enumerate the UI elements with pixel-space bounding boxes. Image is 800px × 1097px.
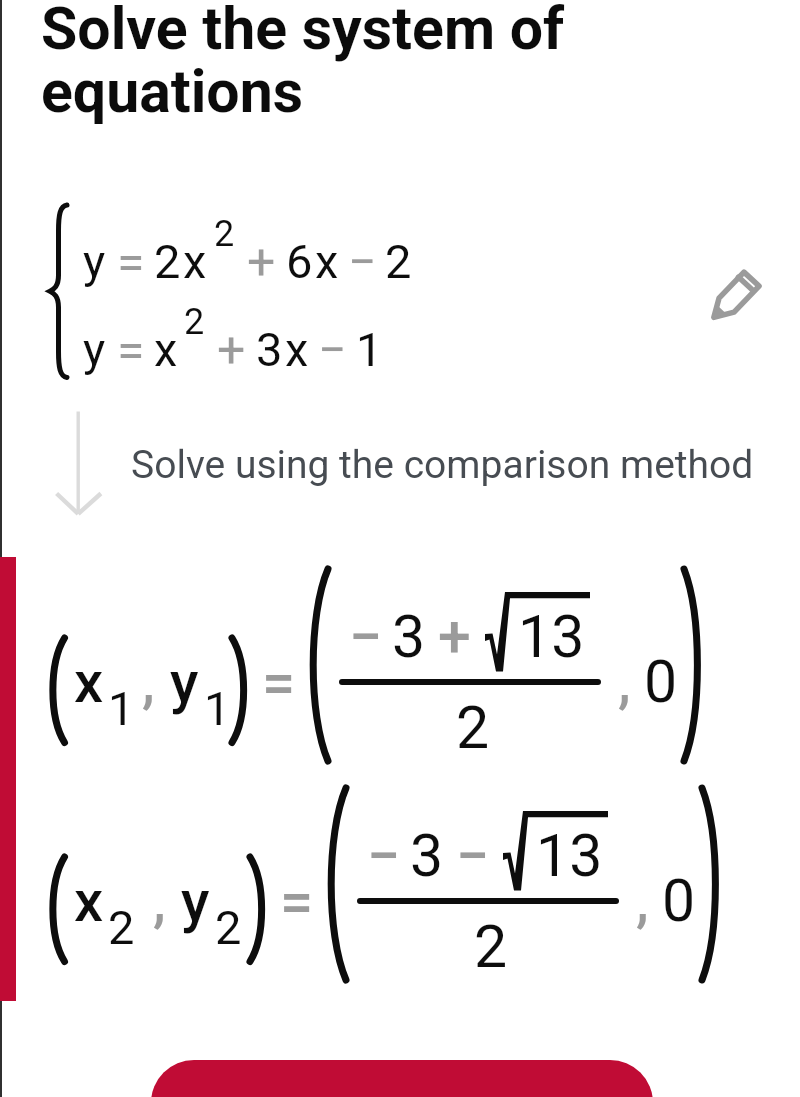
staticText: 1 [204,681,231,736]
staticText: − [456,821,490,890]
staticText: 2 [184,301,205,343]
staticText: 3 [256,322,283,377]
staticText: equations [41,57,304,126]
staticText: − [349,602,383,671]
staticText: y [83,234,106,289]
staticText: x [183,234,207,289]
staticText: 2 [385,234,412,289]
staticText: 13 [518,602,585,671]
staticText: 0 [662,866,696,935]
staticText: Solve using the comparison method [131,442,754,488]
staticText: − [367,821,401,890]
staticText: = [280,867,314,936]
staticText: 3 [410,821,444,890]
staticText: = [262,648,296,717]
staticText: 2 [108,900,135,955]
staticText: = [117,234,145,293]
staticText: − [318,321,347,380]
staticText: 1 [108,681,135,736]
staticText: x [74,648,104,716]
staticText: = [117,322,145,381]
staticText: x [74,867,104,935]
staticText: 2 [214,213,235,255]
staticText: 1 [356,322,383,377]
staticText: + [438,602,471,671]
staticText: y [181,867,210,935]
staticText: x [285,322,309,377]
staticText: y [170,648,199,716]
button[interactable]: Continue [151,1060,653,1097]
staticText: 6 [286,234,313,289]
staticText: − [348,233,377,292]
staticText: + [217,321,246,380]
staticText: 2 [474,912,508,981]
button[interactable]: Edit [708,264,766,322]
staticText: 13 [536,821,603,890]
staticText: , [153,868,166,935]
staticText: x [315,234,339,289]
staticText: 3 [392,602,426,671]
staticText: Solve the system of [41,0,565,63]
staticText: 2 [456,693,490,762]
staticText: 2 [154,234,181,289]
staticText: x [154,322,178,377]
staticText: , [636,868,649,935]
staticText: y [83,322,106,377]
staticText: + [247,233,276,292]
staticText: 2 [215,900,242,955]
staticText: 0 [644,647,678,716]
staticText: , [142,649,155,716]
staticText: , [618,649,631,716]
